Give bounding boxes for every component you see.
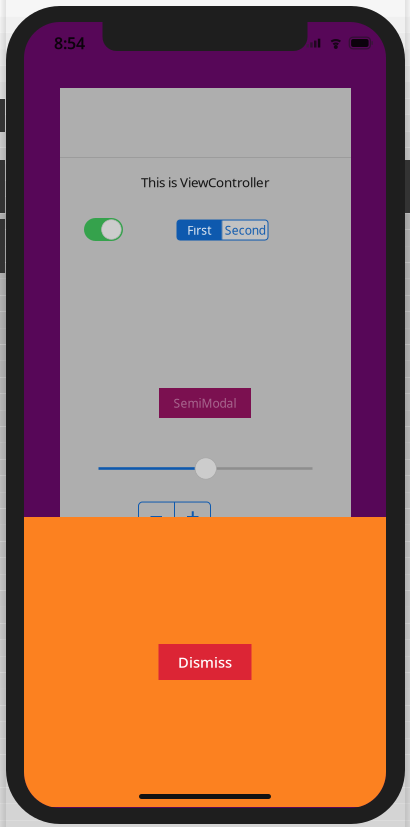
button[interactable]: Switch	[84, 218, 123, 241]
staticText: This is ViewController	[141, 173, 270, 191]
staticText: Second	[225, 222, 266, 238]
button[interactable]: SemiModal	[159, 388, 251, 418]
button[interactable]: Second	[222, 220, 268, 240]
button[interactable]: Increment	[175, 502, 210, 532]
staticText: SemiModal	[173, 395, 236, 411]
staticText: First	[187, 222, 211, 238]
button[interactable]: Decrement	[138, 502, 174, 532]
button[interactable]: Dismiss	[158, 644, 251, 680]
button[interactable]: First	[177, 220, 221, 240]
staticText: Dismiss	[178, 652, 232, 672]
staticText: 8:54	[54, 32, 85, 54]
